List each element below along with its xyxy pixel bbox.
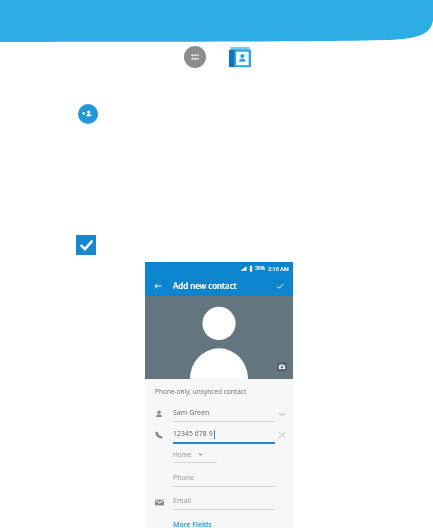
- staticText: Sam Green: [173, 408, 210, 418]
- button[interactable]: Confirm: [76, 235, 96, 255]
- staticText: 12345 678 9: [173, 429, 213, 439]
- staticText: Phone-only, unsynced contact: [155, 387, 247, 396]
- button[interactable]: Email: [153, 496, 289, 510]
- button[interactable]: 12345 678 9: [153, 429, 289, 444]
- button[interactable]: Save: [274, 280, 286, 292]
- button[interactable]: Sam Green: [153, 408, 289, 422]
- button[interactable]: Back: [152, 280, 164, 292]
- button[interactable]: Add contact: [78, 104, 98, 124]
- staticText: 2:16 AM: [268, 265, 289, 272]
- staticText: Phone: [173, 473, 195, 483]
- button[interactable]: More Fields: [173, 520, 212, 528]
- button[interactable]: All apps: [184, 46, 206, 68]
- staticText: Home: [173, 450, 192, 459]
- staticText: 30%: [255, 265, 265, 272]
- button[interactable]: Contacts: [228, 45, 252, 69]
- staticText: Email: [173, 496, 191, 506]
- staticText: Add new contact: [173, 280, 237, 291]
- button[interactable]: Change photo: [277, 362, 287, 372]
- button[interactable]: Phone: [153, 473, 289, 487]
- staticText: More Fields: [173, 520, 212, 528]
